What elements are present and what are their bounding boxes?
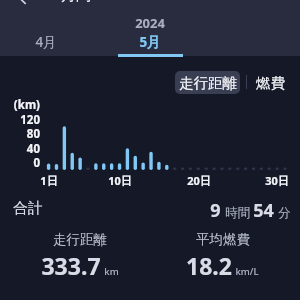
staticText: 20日 (187, 173, 211, 187)
staticText: 120 (20, 112, 40, 128)
staticText: 1日 (40, 173, 58, 187)
staticText: 9 (210, 198, 221, 223)
staticText: 333.7 (41, 250, 101, 281)
button[interactable]: 燃費 (252, 71, 288, 94)
button[interactable]: 4月 (0, 31, 96, 56)
staticText: (km) (13, 97, 40, 113)
staticText: km (104, 265, 119, 278)
button[interactable]: Back (14, 0, 32, 8)
staticText: 走行距離 (53, 231, 107, 248)
staticText: 18.2 (186, 250, 232, 281)
staticText: 時間 (225, 205, 250, 221)
button[interactable]: 走行距離 (175, 71, 240, 94)
staticText: 40 (26, 141, 40, 157)
staticText: 80 (26, 126, 40, 142)
staticText: km/L (235, 265, 259, 278)
staticText: 走行距離 (179, 74, 237, 92)
staticText: 10日 (108, 173, 132, 187)
staticText: 平均燃費 (196, 231, 250, 248)
button[interactable]: 5月 (100, 31, 200, 56)
staticText: 4月 (35, 33, 57, 51)
staticText: 54 (253, 198, 274, 223)
staticText: 30日 (265, 173, 289, 187)
staticText: 5月 (139, 33, 161, 51)
staticText: 0 (33, 155, 40, 171)
staticText: 合計 (13, 199, 43, 218)
staticText: 月間 (61, 0, 91, 5)
staticText: 2024 (135, 14, 165, 32)
staticText: 燃費 (256, 74, 285, 92)
staticText: 分 (278, 205, 291, 221)
